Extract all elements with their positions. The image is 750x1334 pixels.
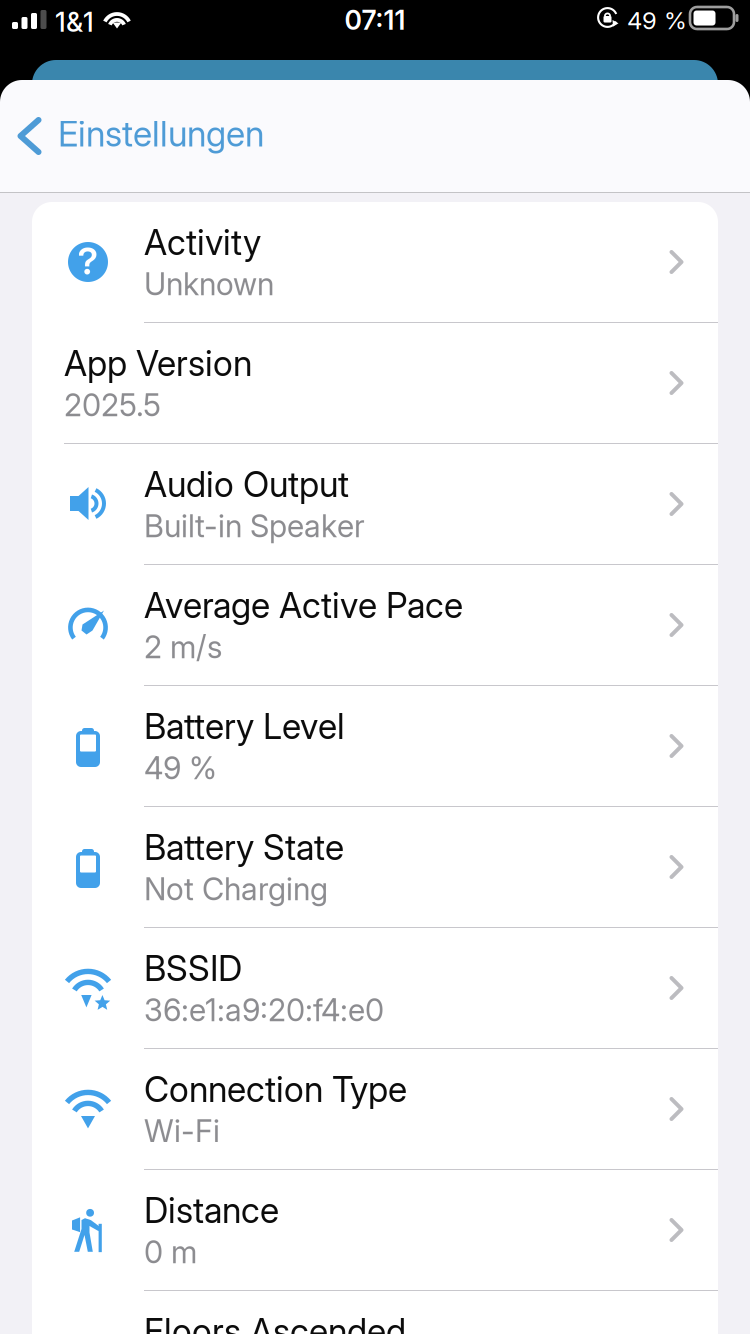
button[interactable]: Floors Ascended xyxy=(32,1291,718,1334)
button[interactable]: Average Active Pace xyxy=(32,565,718,686)
staticText: BSSID xyxy=(144,947,242,989)
staticText: 2 m/s xyxy=(144,628,222,665)
button[interactable]: Connection Type xyxy=(32,1049,718,1170)
staticText: Built-in Speaker xyxy=(144,507,365,544)
staticText: 49 % xyxy=(627,6,687,35)
staticText: Unknown xyxy=(144,265,274,302)
button[interactable]: Audio Output xyxy=(32,444,718,565)
button[interactable]: Battery Level xyxy=(32,686,718,807)
staticText: 0 m xyxy=(144,1233,197,1270)
staticText: 36:e1:a9:20:f4:e0 xyxy=(144,991,384,1028)
staticText: Not Charging xyxy=(144,870,328,907)
button[interactable]: App Version xyxy=(32,323,718,444)
staticText: ? xyxy=(77,238,98,284)
button[interactable]: Battery State xyxy=(32,807,718,928)
staticText: Connection Type xyxy=(144,1068,407,1110)
staticText: 1&1 xyxy=(55,6,94,38)
staticText: App Version xyxy=(64,342,252,384)
button[interactable]: ? xyxy=(32,202,718,323)
staticText: Audio Output xyxy=(144,463,349,505)
staticText: Average Active Pace xyxy=(144,584,463,626)
staticText: Distance xyxy=(144,1189,279,1231)
staticText: Activity xyxy=(144,221,261,263)
staticText: 2025.5 xyxy=(64,386,161,423)
staticText: Floors Ascended xyxy=(144,1310,406,1334)
staticText: Battery Level xyxy=(144,705,345,747)
button[interactable]: Einstellungen xyxy=(0,82,280,194)
button[interactable]: Distance xyxy=(32,1170,718,1291)
staticText: Battery State xyxy=(144,826,344,868)
staticText: 49 % xyxy=(144,749,217,786)
button[interactable]: BSSID xyxy=(32,928,718,1049)
staticText: Wi-Fi xyxy=(144,1112,220,1149)
staticText: 07:11 xyxy=(344,4,405,36)
staticText: Einstellungen xyxy=(58,113,264,155)
